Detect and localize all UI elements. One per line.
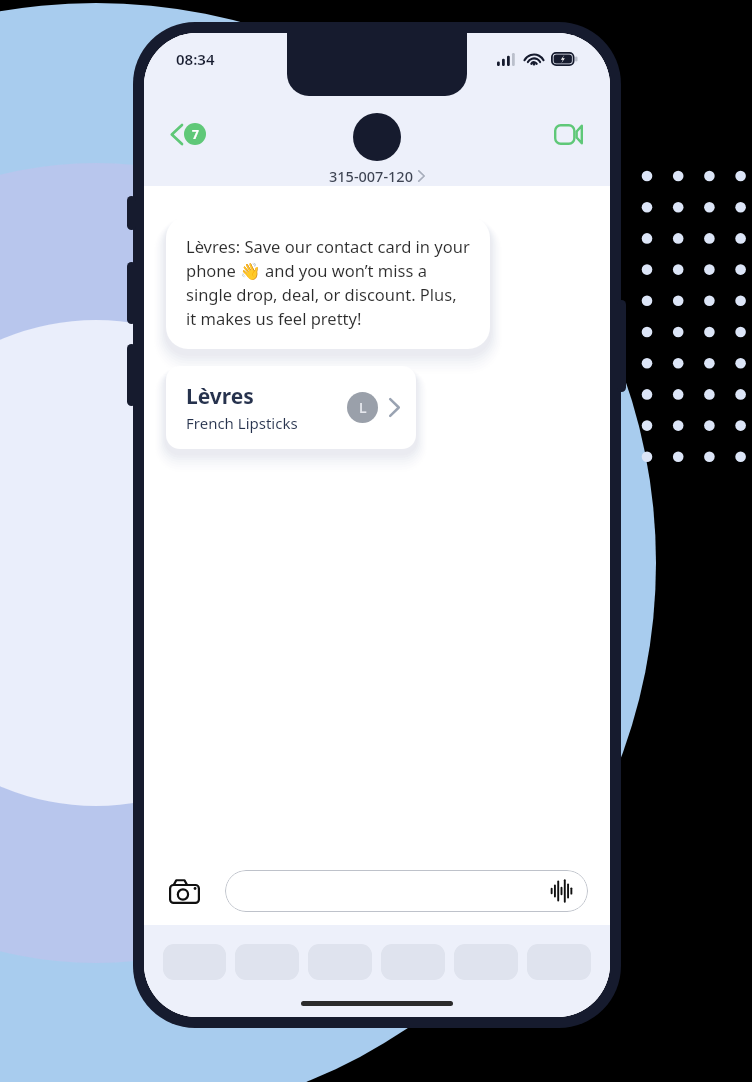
staticText: Lèvres xyxy=(186,382,254,411)
staticText: L xyxy=(359,398,367,417)
button[interactable]: Camera xyxy=(166,876,203,907)
staticText: French Lipsticks xyxy=(186,413,298,433)
button[interactable]: Back, 7 unread xyxy=(164,117,212,151)
button[interactable]: 315-007-120 xyxy=(329,166,425,186)
staticText: 7 xyxy=(192,126,199,142)
button[interactable]: Contact avatar xyxy=(353,113,401,161)
staticText: 315-007-120 xyxy=(329,166,413,186)
button[interactable]: Lèvres xyxy=(166,366,416,449)
button[interactable]: Lèvres: Save our contact card in your ph… xyxy=(166,216,490,349)
staticText: Lèvres: Save our contact card in your ph… xyxy=(186,235,470,330)
button[interactable]: Video call xyxy=(547,117,590,152)
button[interactable] xyxy=(225,870,588,912)
staticText: 08:34 xyxy=(176,49,215,69)
